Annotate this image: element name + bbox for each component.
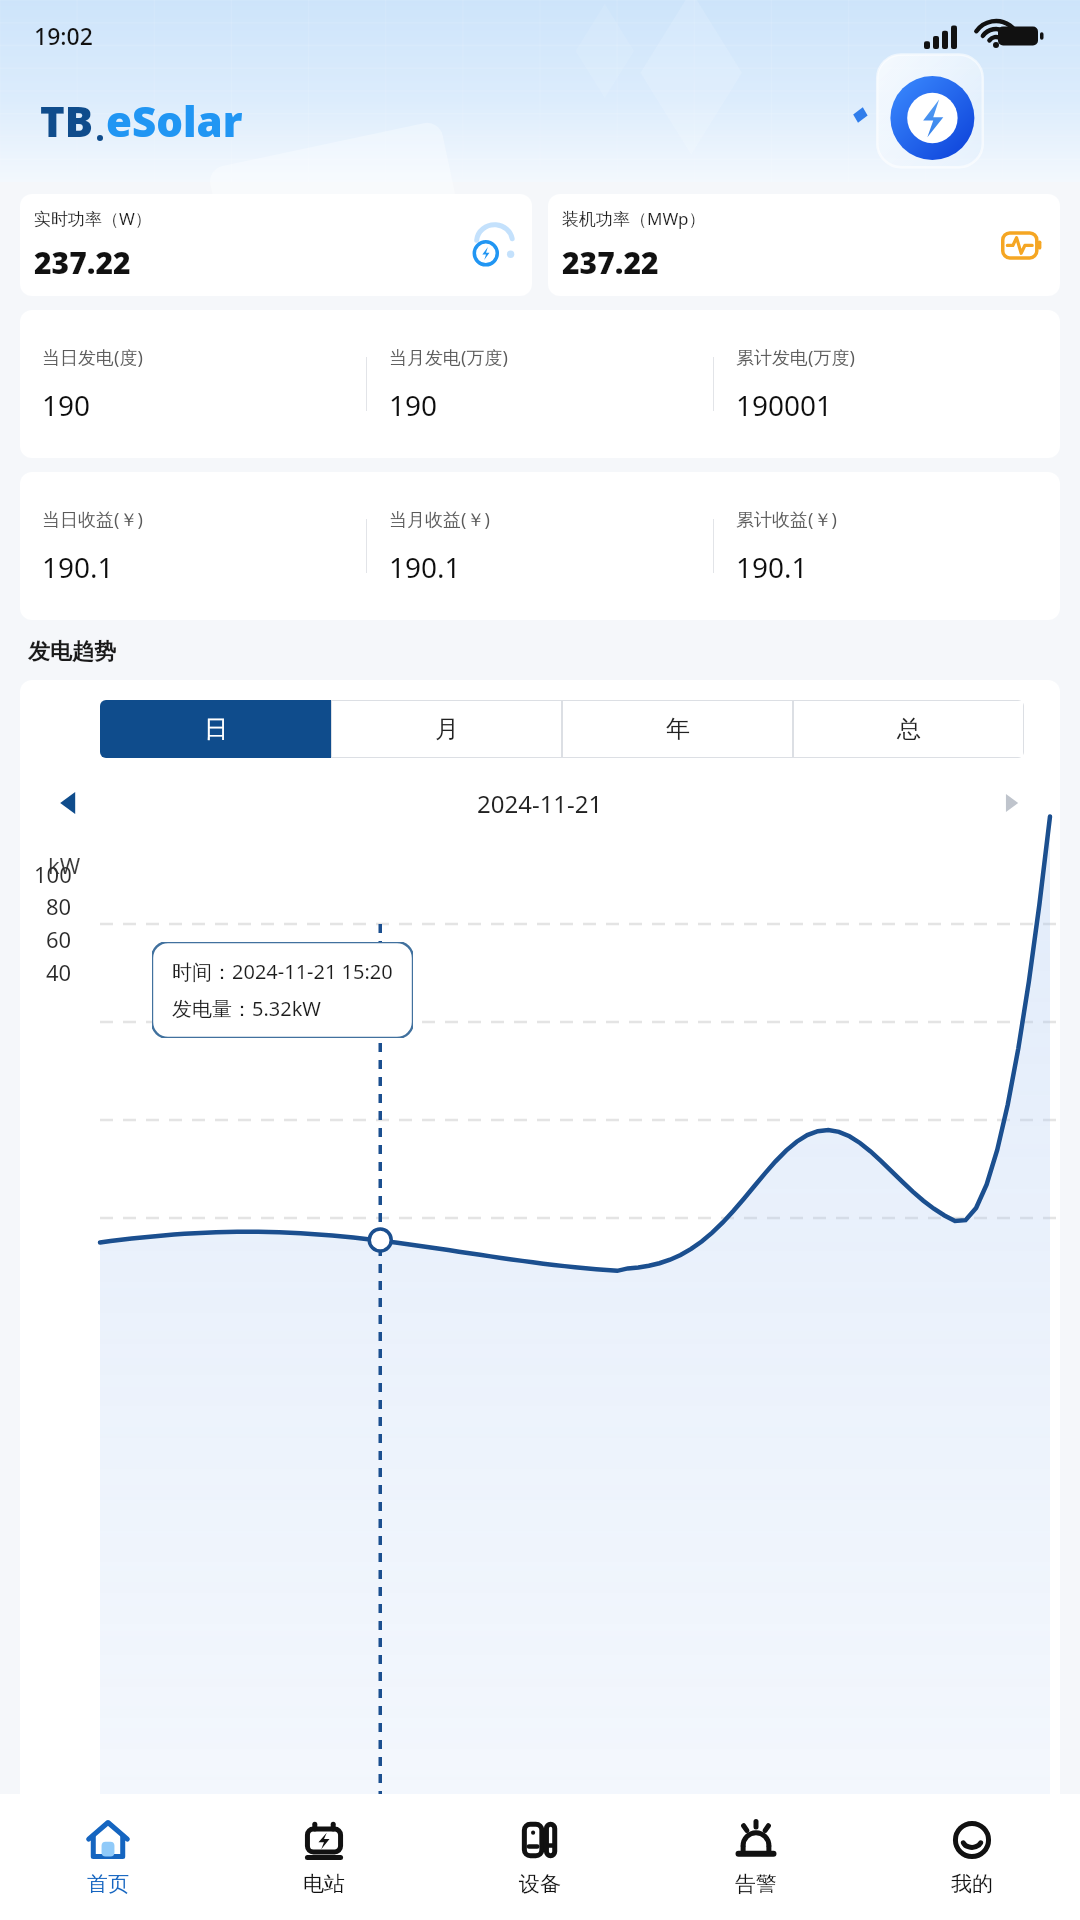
staticText: 年 [666, 714, 690, 744]
button[interactable]: 当月发电(万度) [367, 310, 713, 458]
button[interactable]: 月 [331, 700, 562, 758]
button[interactable]: Previous day [48, 782, 90, 824]
staticText: 日 [204, 714, 228, 744]
staticText: 发电趋势 [28, 638, 116, 666]
staticText: 当月收益(￥) [389, 507, 490, 532]
staticText: 190 [42, 386, 91, 424]
button[interactable]: 实时功率（W） [20, 194, 532, 296]
staticText: 237.22 [562, 242, 659, 283]
staticText: 2024-11-21 [477, 787, 603, 820]
staticText: 19:02 [34, 20, 93, 51]
staticText: 装机功率（MWp） [562, 207, 706, 230]
staticText: 190.1 [42, 548, 114, 586]
button[interactable]: 年 [562, 700, 793, 758]
button[interactable]: 我的 [864, 1794, 1080, 1920]
staticText: 当日收益(￥) [42, 507, 143, 532]
staticText: TB [40, 92, 94, 149]
staticText: 累计收益(￥) [736, 507, 837, 532]
staticText: 190.1 [389, 548, 461, 586]
button[interactable]: 设备 [432, 1794, 648, 1920]
button[interactable]: 电站 [216, 1794, 432, 1920]
staticText: 实时功率（W） [34, 207, 152, 230]
staticText: 设备 [519, 1871, 561, 1897]
staticText: kW [48, 850, 81, 880]
button[interactable]: 首页 [0, 1794, 216, 1920]
staticText: 190 [389, 386, 438, 424]
staticText: 40 [46, 957, 72, 987]
staticText: 首页 [87, 1871, 129, 1897]
staticText: 237.22 [34, 242, 131, 283]
staticText: 190001 [736, 386, 833, 424]
button[interactable]: 当日收益(￥) [20, 472, 366, 620]
staticText: 当月发电(万度) [389, 345, 508, 370]
button[interactable]: Next day [990, 782, 1032, 824]
staticText: 当日发电(度) [42, 345, 143, 370]
button[interactable]: 当月收益(￥) [367, 472, 713, 620]
staticText: 100 [34, 859, 72, 889]
staticText: 时间：2024-11-21 15:20 [172, 958, 393, 985]
button[interactable]: 装机功率（MWp） [548, 194, 1060, 296]
staticText: 60 [46, 924, 72, 954]
staticText: 累计发电(万度) [736, 345, 855, 370]
button[interactable]: 累计发电(万度) [714, 310, 1060, 458]
button[interactable]: 日 [100, 700, 331, 758]
staticText: 80 [46, 891, 72, 921]
button[interactable]: 累计收益(￥) [714, 472, 1060, 620]
staticText: 月 [435, 714, 459, 744]
staticText: 电站 [303, 1871, 345, 1897]
button[interactable]: 总 [793, 700, 1024, 758]
staticText: 190.1 [736, 548, 808, 586]
button[interactable]: 当日发电(度) [20, 310, 366, 458]
staticText: 总 [897, 714, 921, 744]
staticText: 告警 [735, 1871, 777, 1897]
staticText: 发电量：5.32kW [172, 995, 321, 1022]
button[interactable]: 告警 [648, 1794, 864, 1920]
staticText: 我的 [951, 1871, 993, 1897]
staticText: eSolar [106, 92, 243, 149]
